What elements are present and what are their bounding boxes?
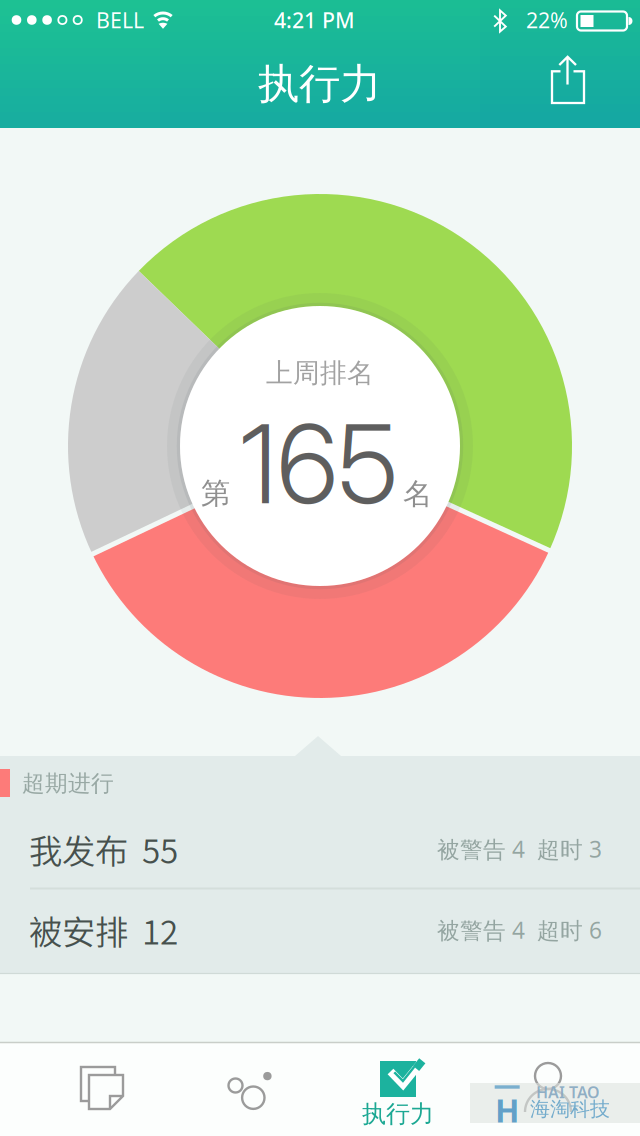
staticText: 海淘科技: [530, 1097, 610, 1121]
button[interactable]: 被安排 12: [0, 890, 640, 970]
staticText: 4:21 PM: [274, 6, 355, 34]
button[interactable]: 我发布 55: [0, 809, 640, 889]
staticText: 被警告 4 超时 3: [437, 834, 602, 864]
staticText: 我发布 55: [29, 825, 178, 873]
button[interactable]: Share: [533, 47, 603, 117]
staticText: 22%: [526, 6, 568, 34]
button[interactable]: Contacts: [173, 1042, 333, 1136]
staticText: 被安排 12: [29, 906, 178, 954]
staticText: HAI TAO: [536, 1081, 600, 1103]
button[interactable]: Profile: [468, 1042, 628, 1136]
staticText: 上周排名: [266, 357, 374, 389]
staticText: BELL: [96, 6, 144, 34]
staticText: 被警告 4 超时 6: [437, 915, 602, 945]
staticText: 名: [403, 476, 432, 512]
button[interactable]: 执行力: [320, 1042, 480, 1136]
staticText: 第: [201, 475, 230, 511]
staticText: 执行力: [258, 59, 381, 109]
staticText: 165: [240, 399, 398, 529]
staticText: H: [495, 1089, 519, 1131]
staticText: 超期进行: [22, 770, 114, 797]
button[interactable]: Tasks: [20, 1042, 180, 1136]
staticText: 执行力: [362, 1099, 434, 1129]
